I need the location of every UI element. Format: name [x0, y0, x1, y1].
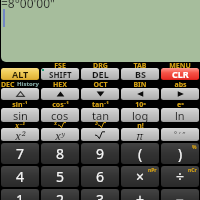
staticText: ): [178, 144, 183, 163]
button[interactable]: 6: [81, 166, 119, 187]
button[interactable]: Move down: [81, 88, 119, 100]
staticText: x⁻¹: [15, 121, 25, 128]
button[interactable]: −: [161, 189, 199, 200]
staticText: DEC: [1, 80, 15, 87]
staticText: BS: [135, 68, 146, 80]
staticText: MENU: [169, 61, 191, 68]
staticText: 2: [56, 190, 65, 200]
staticText: 7: [16, 144, 25, 163]
staticText: 1: [16, 190, 25, 200]
staticText: ÷: [176, 167, 185, 186]
staticText: HEX: [53, 80, 67, 87]
staticText: cos⁻¹: [52, 100, 69, 107]
button[interactable]: sin: [1, 108, 39, 122]
button[interactable]: ÷: [161, 166, 199, 187]
staticText: SHIFT: [49, 69, 72, 80]
staticText: 3: [96, 190, 105, 200]
staticText: abs: [174, 80, 187, 87]
staticText: %: [192, 144, 197, 151]
staticText: History: [17, 80, 39, 87]
button[interactable]: CLR: [161, 68, 199, 80]
staticText: xʸ: [55, 128, 65, 141]
staticText: x²: [15, 128, 26, 141]
staticText: nCr: [188, 167, 197, 174]
button[interactable]: Move left: [121, 88, 159, 100]
staticText: tan⁻¹: [92, 100, 109, 107]
staticText: DRG: [93, 61, 108, 68]
button[interactable]: Show history: [1, 88, 39, 100]
staticText: n!: [137, 121, 144, 128]
staticText: x: [54, 120, 58, 127]
staticText: TAB: [133, 61, 147, 68]
button[interactable]: xʸ: [41, 128, 79, 141]
staticText: BIN: [133, 80, 147, 87]
button[interactable]: BS: [121, 68, 159, 80]
button[interactable]: ): [161, 143, 199, 164]
staticText: 9: [96, 144, 105, 163]
button[interactable]: log: [121, 108, 159, 122]
button[interactable]: 8: [41, 143, 79, 164]
button[interactable]: 7: [1, 143, 39, 164]
button[interactable]: DEL: [81, 68, 119, 80]
staticText: sin⁻¹: [12, 100, 28, 107]
button[interactable]: ALT: [1, 68, 39, 80]
button[interactable]: 3: [81, 189, 119, 200]
staticText: +: [136, 190, 145, 200]
staticText: 5: [56, 167, 65, 186]
staticText: eˣ: [177, 100, 184, 107]
staticText: CLR: [172, 68, 189, 80]
staticText: log: [132, 108, 149, 122]
staticText: cos: [51, 108, 69, 122]
staticText: 3: [95, 120, 98, 127]
button[interactable]: Square root: [81, 128, 119, 141]
button[interactable]: x²: [1, 128, 39, 141]
staticText: DEL: [92, 68, 109, 80]
button[interactable]: 1: [1, 189, 39, 200]
staticText: =8°00'00": [1, 0, 55, 11]
staticText: −: [176, 190, 185, 200]
staticText: 6: [96, 167, 105, 186]
button[interactable]: Move up: [41, 88, 79, 100]
button[interactable]: 2: [41, 189, 79, 200]
button[interactable]: cos: [41, 108, 79, 122]
staticText: ° ′ ″: [174, 130, 186, 140]
staticText: tan: [92, 108, 109, 122]
button[interactable]: +: [121, 189, 159, 200]
button[interactable]: tan: [81, 108, 119, 122]
staticText: OCT: [93, 80, 108, 87]
staticText: nPr: [148, 167, 157, 174]
staticText: 4: [16, 167, 25, 186]
staticText: π: [136, 128, 144, 141]
button[interactable]: 9: [81, 143, 119, 164]
button[interactable]: Move right: [161, 88, 199, 100]
staticText: ×: [136, 167, 145, 186]
button[interactable]: π: [121, 128, 159, 141]
button[interactable]: 5: [41, 166, 79, 187]
staticText: sin: [13, 108, 28, 122]
staticText: FSE: [54, 61, 66, 68]
button[interactable]: ° ′ ″: [161, 128, 199, 141]
button[interactable]: ×: [121, 166, 159, 187]
staticText: (: [138, 144, 143, 163]
button[interactable]: ln: [161, 108, 199, 122]
button[interactable]: (: [121, 143, 159, 164]
staticText: 8: [56, 144, 65, 163]
button[interactable]: SHIFT: [41, 68, 79, 80]
button[interactable]: 4: [1, 166, 39, 187]
staticText: ALT: [12, 68, 29, 80]
staticText: ln: [175, 108, 185, 122]
staticText: 10ˣ: [135, 100, 146, 107]
